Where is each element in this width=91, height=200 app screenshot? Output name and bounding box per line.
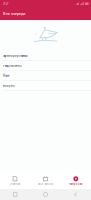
staticText: История (3, 84, 14, 87)
button[interactable]: Уведомления (0, 61, 91, 71)
staticText: Вне очереди (3, 11, 25, 16)
staticText: Язык (3, 74, 9, 77)
button[interactable]: История (0, 81, 91, 91)
staticText: 21:27 (3, 2, 8, 5)
staticText: Зарегистрироваться (3, 54, 27, 57)
button[interactable]: Recents (0, 189, 30, 200)
button[interactable]: Back (61, 189, 91, 200)
button[interactable]: Язык (0, 71, 91, 81)
button[interactable]: Home (30, 189, 61, 200)
button[interactable]: Главная (0, 173, 30, 189)
button[interactable]: Настройки (61, 173, 91, 189)
button[interactable]: Мои записи (30, 173, 61, 189)
staticText: Мои записи (37, 182, 53, 186)
staticText: Настройки (69, 182, 83, 186)
staticText: Уведомления (3, 64, 21, 67)
button[interactable]: Зарегистрироваться (0, 51, 91, 61)
staticText: Главная (10, 182, 21, 186)
